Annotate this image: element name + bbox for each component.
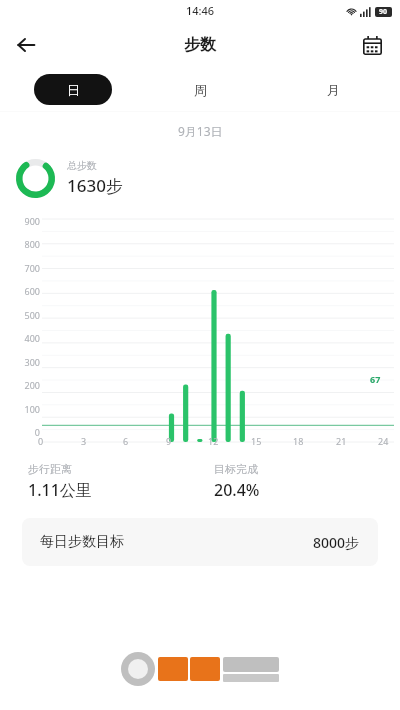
staticText: 600 (24, 285, 40, 297)
staticText: 67 (370, 373, 381, 385)
staticText: 9 (166, 435, 172, 447)
staticText: 700 (24, 262, 40, 274)
staticText: 100 (24, 403, 40, 415)
staticText: 步数 (184, 35, 216, 55)
button[interactable]: Calendar (352, 25, 392, 65)
staticText: 目标完成 (214, 462, 258, 476)
button[interactable]: 周 (134, 74, 267, 105)
staticText: 12 (208, 435, 219, 447)
staticText: 3 (81, 435, 87, 447)
staticText: 0 (38, 435, 44, 447)
staticText: 21 (336, 435, 347, 447)
staticText: 200 (24, 379, 40, 391)
staticText: 8000步 (313, 533, 360, 552)
staticText: 18 (293, 435, 304, 447)
staticText: 15 (251, 435, 262, 447)
staticText: 24 (378, 435, 389, 447)
button[interactable]: 日 (34, 74, 112, 105)
staticText: 每日步数目标 (40, 533, 124, 551)
staticText: 步行距离 (28, 462, 72, 476)
staticText: 1630步 (67, 174, 123, 197)
staticText: 800 (24, 238, 40, 250)
staticText: 1.11公里 (28, 479, 92, 501)
staticText: 总步数 (67, 159, 97, 172)
button[interactable]: 月 (267, 74, 400, 105)
button[interactable]: 每日步数目标 (22, 518, 378, 566)
staticText: 400 (24, 332, 40, 344)
staticText: 月 (327, 82, 340, 98)
staticText: 300 (24, 356, 40, 368)
staticText: 20.4% (214, 479, 260, 501)
staticText: 周 (194, 82, 207, 98)
staticText: 9月13日 (178, 123, 223, 139)
staticText: 900 (24, 215, 40, 227)
button[interactable]: Back (6, 25, 46, 65)
staticText: 90 (379, 7, 388, 17)
staticText: 0 (34, 426, 40, 438)
staticText: 6 (123, 435, 129, 447)
staticText: 日 (67, 82, 80, 98)
staticText: 500 (24, 309, 40, 321)
staticText: 14:46 (186, 3, 215, 18)
